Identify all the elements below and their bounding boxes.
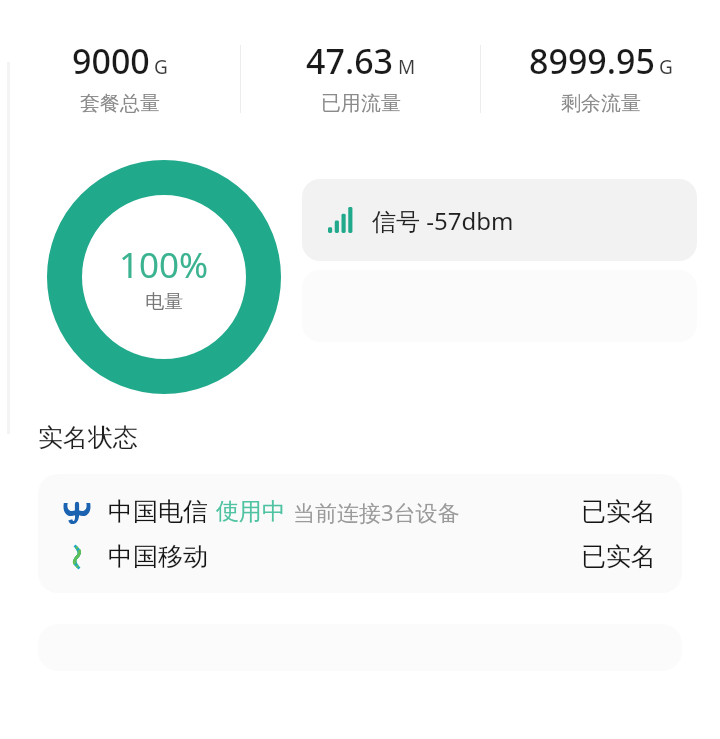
other: China Mobile [62,542,92,572]
staticText: 当前连接3台设备 [293,497,460,527]
staticText: 已实名 [581,541,656,572]
button[interactable]: 47.63 [241,38,480,116]
staticText: 中国电信 [108,496,208,527]
button[interactable]: China Mobile [38,534,682,579]
staticText: 中国移动 [108,541,208,572]
staticText: 信号 -57dbm [372,204,514,237]
button[interactable]: Battery 100 percent [47,160,281,394]
staticText: 套餐总量 [80,91,160,116]
staticText: 8999.95 [529,38,655,84]
button[interactable]: China Telecom [38,489,682,534]
other: Signal strength [328,207,358,233]
staticText: 已用流量 [321,91,401,116]
button[interactable]: 8999.95 [481,38,720,116]
staticText: 使用中 [216,497,285,526]
staticText: M [398,54,416,80]
staticText: 9000 [72,38,150,84]
button[interactable]: Signal strength [302,179,697,261]
staticText: G [154,54,168,80]
staticText: 实名状态 [38,422,138,453]
staticText: 47.63 [306,38,394,84]
staticText: 100% [119,241,209,289]
staticText: 已实名 [581,496,656,527]
staticText: 剩余流量 [561,91,641,116]
staticText: 电量 [145,290,183,314]
other: China Telecom [62,497,92,527]
button[interactable]: 9000 [0,38,240,116]
staticText: G [659,54,673,80]
